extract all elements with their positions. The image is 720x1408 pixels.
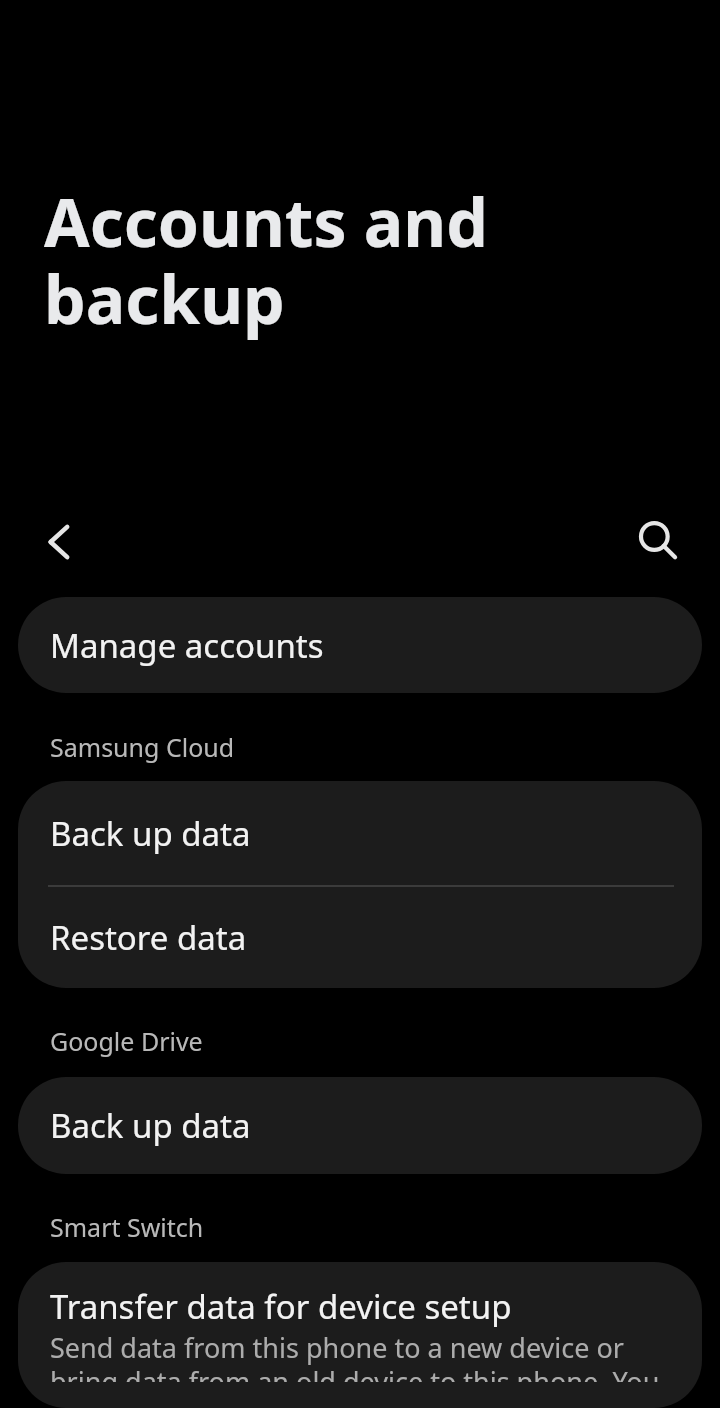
button[interactable]: Navigate up — [22, 506, 94, 578]
staticText: Back up data — [50, 811, 251, 856]
button[interactable]: Search — [622, 506, 694, 578]
staticText: Samsung Cloud — [50, 730, 235, 764]
staticText: Google Drive — [50, 1024, 203, 1058]
staticText: Send data from this phone to a new devic… — [50, 1329, 674, 1382]
staticText: Back up data — [50, 1103, 251, 1148]
staticText: Accounts and backup — [44, 176, 720, 344]
staticText: Manage accounts — [50, 623, 324, 668]
button[interactable]: Transfer data for device setup — [18, 1262, 702, 1408]
staticText: Smart Switch — [50, 1210, 204, 1244]
staticText: Transfer data for device setup — [50, 1284, 512, 1329]
button[interactable]: Manage accounts — [18, 597, 702, 693]
button[interactable]: Back up data — [18, 781, 702, 885]
button[interactable]: Restore data — [18, 887, 702, 988]
button[interactable]: Back up data — [18, 1077, 702, 1174]
staticText: Restore data — [50, 915, 247, 960]
